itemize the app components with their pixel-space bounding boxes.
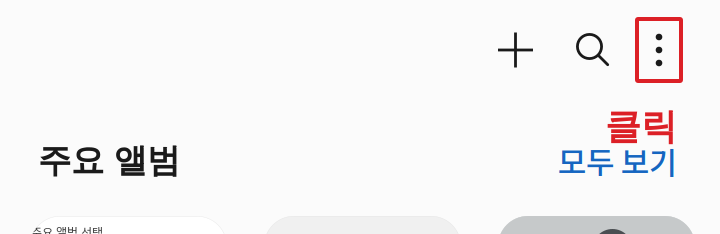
staticText: 클릭 xyxy=(605,104,677,149)
button[interactable]: Album xyxy=(264,216,461,234)
button[interactable]: Add xyxy=(480,17,551,83)
button[interactable]: 모두 보기 xyxy=(558,138,677,183)
button[interactable]: More options xyxy=(635,17,683,83)
button[interactable]: 주요 앨범 선택 xyxy=(30,216,227,234)
staticText: 모두 보기 xyxy=(558,138,677,183)
staticText: 주요 앨범 xyxy=(38,140,180,182)
staticText: 주요 앨범 선택 xyxy=(31,223,103,234)
button[interactable]: Album xyxy=(498,216,695,234)
button[interactable]: Search xyxy=(551,17,635,83)
